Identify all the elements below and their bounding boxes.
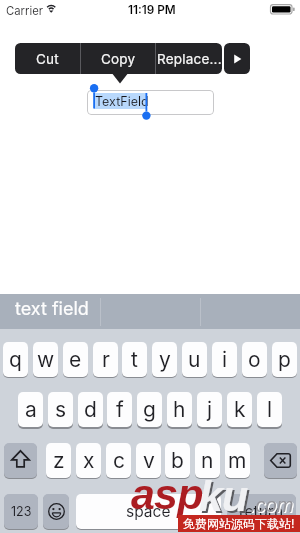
button[interactable]: w (33, 342, 58, 377)
staticText: v (143, 448, 155, 473)
staticText: Carrier (6, 4, 44, 18)
button[interactable]: c (106, 443, 131, 478)
button[interactable] (4, 443, 37, 478)
staticText: s (55, 397, 67, 422)
button[interactable]: k (227, 392, 252, 427)
button[interactable] (43, 494, 69, 529)
staticText: 123 (11, 504, 32, 519)
button[interactable]: y (152, 342, 177, 377)
button[interactable]: u (182, 342, 207, 377)
button[interactable]: e (63, 342, 88, 377)
button[interactable] (87, 90, 214, 115)
staticText: 11:19 PM (128, 3, 176, 17)
button[interactable]: m (225, 443, 250, 478)
staticText: q (9, 347, 22, 372)
staticText: .com (251, 495, 295, 517)
staticText: Replace... (157, 51, 222, 67)
staticText: return (239, 502, 284, 521)
button[interactable] (264, 443, 297, 478)
staticText: n (201, 448, 214, 473)
staticText: Copy (101, 51, 136, 67)
button[interactable]: return (227, 494, 296, 529)
button[interactable]: l (257, 392, 282, 427)
button[interactable]: n (195, 443, 220, 478)
button[interactable] (224, 43, 250, 74)
staticText: c (113, 448, 125, 473)
staticText: space (126, 502, 171, 521)
button[interactable]: h (167, 392, 192, 427)
button[interactable]: a (18, 392, 43, 427)
staticText: g (143, 397, 156, 422)
button[interactable]: j (197, 392, 222, 427)
staticText: x (83, 448, 95, 473)
staticText: k (234, 397, 246, 422)
staticText: 免费网站源码下载站! (183, 516, 295, 531)
button[interactable]: i (212, 342, 237, 377)
staticText: a (25, 397, 37, 422)
staticText: m (228, 448, 247, 473)
button[interactable]: z (46, 443, 71, 478)
staticText: .com (250, 494, 294, 516)
staticText: f (116, 397, 124, 422)
staticText: y (159, 347, 171, 372)
staticText: d (84, 397, 97, 422)
button[interactable]: x (76, 443, 101, 478)
staticText: l (267, 397, 273, 422)
staticText: ku (199, 472, 248, 520)
button[interactable]: t (122, 342, 147, 377)
button[interactable]: space (76, 494, 221, 529)
button[interactable]: Replace... (156, 43, 222, 74)
staticText: u (188, 347, 201, 372)
staticText: i (222, 347, 228, 372)
button[interactable]: q (3, 342, 28, 377)
button[interactable]: Cut (15, 43, 80, 74)
staticText: ku (201, 474, 250, 522)
staticText: text field (15, 298, 89, 320)
staticText: r (102, 347, 110, 372)
button[interactable]: b (165, 443, 190, 478)
button[interactable]: f (107, 392, 132, 427)
staticText: p (278, 347, 291, 372)
staticText: b (171, 448, 184, 473)
button[interactable]: Copy (81, 43, 155, 74)
button[interactable]: 123 (4, 494, 38, 529)
button[interactable]: p (272, 342, 297, 377)
button[interactable]: r (93, 342, 118, 377)
button[interactable]: s (48, 392, 73, 427)
button[interactable]: v (136, 443, 161, 478)
staticText: o (248, 347, 261, 372)
staticText: e (69, 347, 82, 372)
staticText: TextField (95, 94, 149, 109)
staticText: h (173, 397, 186, 422)
staticText: j (207, 397, 213, 422)
staticText: z (53, 448, 65, 473)
staticText: t (131, 347, 138, 372)
staticText: w (37, 347, 55, 372)
staticText: Cut (36, 51, 59, 67)
button[interactable]: d (78, 392, 103, 427)
staticText: asp (131, 470, 203, 518)
button[interactable]: o (242, 342, 267, 377)
button[interactable]: g (137, 392, 162, 427)
button[interactable] (0, 294, 100, 329)
